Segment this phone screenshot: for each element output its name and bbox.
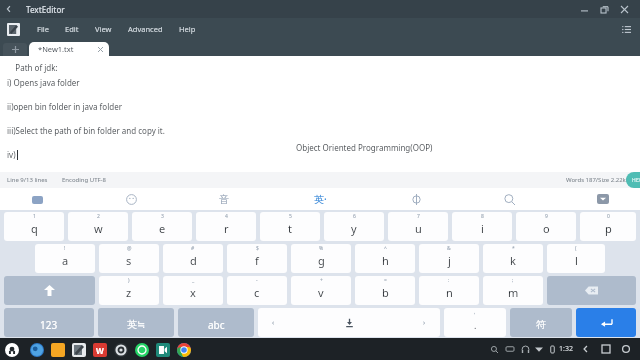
staticText: + (320, 277, 323, 284)
button[interactable]: Backspace (547, 276, 636, 305)
button[interactable]: *New1.txt (29, 42, 109, 56)
button[interactable]: 2 (68, 212, 128, 241)
staticText: g (318, 253, 325, 268)
button[interactable]: 5 (260, 212, 320, 241)
button[interactable]: ) (99, 276, 159, 305)
button[interactable]: Minimize (574, 0, 594, 18)
button[interactable]: abc (178, 308, 254, 337)
button[interactable]: ; (483, 276, 543, 305)
button[interactable]: Maximize (594, 0, 614, 18)
staticText: a (62, 253, 69, 268)
button[interactable]: Shift (4, 276, 95, 305)
button[interactable]: = (355, 276, 415, 305)
staticText: , (474, 309, 476, 316)
button[interactable]: Settings (110, 339, 131, 360)
button[interactable]: 7 (388, 212, 448, 241)
staticText: * (512, 245, 515, 252)
staticText: t (288, 221, 292, 236)
staticText: Edit (65, 24, 79, 34)
button[interactable]: Video (152, 339, 173, 360)
button[interactable]: 6 (324, 212, 384, 241)
staticText: › (423, 318, 426, 328)
button[interactable]: & (419, 244, 479, 273)
staticText: 音 (219, 193, 229, 206)
button[interactable]: Emoji (118, 188, 144, 210)
button[interactable]: + (291, 276, 351, 305)
staticText: = (384, 277, 387, 284)
button[interactable]: : (419, 276, 479, 305)
staticText: y (351, 221, 357, 236)
staticText: d (190, 253, 197, 268)
button[interactable]: 0 (580, 212, 636, 241)
button[interactable]: Input mode (24, 188, 50, 210)
button[interactable]: Voice (403, 188, 429, 210)
button[interactable]: % (291, 244, 351, 273)
staticText: 123 (40, 318, 58, 332)
button[interactable]: 符 (510, 308, 572, 337)
button[interactable]: Space (258, 308, 440, 337)
staticText: 英· (314, 192, 327, 206)
button[interactable]: _ (163, 276, 223, 305)
button[interactable]: 英· (305, 188, 335, 210)
button[interactable]: Back (576, 339, 596, 359)
staticText: l (575, 253, 578, 268)
button[interactable]: 音 (211, 188, 237, 210)
staticText: 0 (607, 213, 610, 220)
staticText: s (126, 253, 132, 268)
button[interactable]: Files (47, 339, 68, 360)
button[interactable]: Recents (596, 339, 616, 359)
button[interactable]: Hide keyboard (590, 188, 616, 210)
button[interactable]: TextEditor (68, 339, 89, 360)
staticText: z (126, 285, 132, 300)
button[interactable]: Browser (26, 339, 47, 360)
button[interactable]: 3 (132, 212, 192, 241)
button[interactable]: File (29, 18, 57, 40)
button[interactable]: Close (614, 0, 634, 18)
button[interactable]: Advanced (120, 18, 171, 40)
staticText: x (190, 285, 196, 300)
button[interactable]: - (227, 276, 287, 305)
button[interactable]: 英≒ (98, 308, 174, 337)
button[interactable]: @ (99, 244, 159, 273)
button[interactable]: Floating action (626, 172, 640, 188)
button[interactable]: Edit (57, 18, 87, 40)
button[interactable]: Search (486, 341, 502, 357)
staticText: Line 9/13 lines (7, 176, 48, 184)
button[interactable]: 9 (516, 212, 576, 241)
staticText: 1 (33, 213, 36, 220)
staticText: abc (208, 318, 225, 332)
button[interactable]: 1 (4, 212, 64, 241)
button[interactable]: WhatsApp (131, 339, 152, 360)
button[interactable]: # (163, 244, 223, 273)
button[interactable]: Help (171, 18, 204, 40)
button[interactable]: App icon (7, 23, 20, 36)
button[interactable]: View (87, 18, 120, 40)
button[interactable]: ( (547, 244, 605, 273)
button[interactable]: 123 (4, 308, 94, 337)
button[interactable]: * (483, 244, 543, 273)
staticText: & (447, 245, 451, 252)
staticText: b (382, 285, 389, 300)
button[interactable]: Chrome (173, 339, 194, 360)
button[interactable]: Back (0, 0, 18, 18)
button[interactable]: WPS (89, 339, 110, 360)
staticText: m (508, 285, 519, 300)
button[interactable]: Close tab (95, 44, 105, 54)
button[interactable]: Home (2, 340, 22, 360)
staticText: $ (256, 245, 259, 252)
button[interactable]: Home (616, 339, 636, 359)
button[interactable]: ^ (355, 244, 415, 273)
button[interactable]: New tab (3, 43, 27, 56)
button[interactable]: , (444, 308, 506, 337)
button[interactable]: More options (618, 21, 634, 37)
staticText: Advanced (128, 24, 163, 34)
staticText: i (481, 221, 484, 236)
button[interactable]: $ (227, 244, 287, 273)
button[interactable]: Enter (576, 308, 636, 337)
button[interactable]: Keyboard status (502, 341, 518, 357)
button[interactable]: Search (496, 188, 522, 210)
staticText: ) (128, 277, 130, 284)
button[interactable]: 4 (196, 212, 256, 241)
button[interactable]: 8 (452, 212, 512, 241)
button[interactable]: ! (35, 244, 95, 273)
